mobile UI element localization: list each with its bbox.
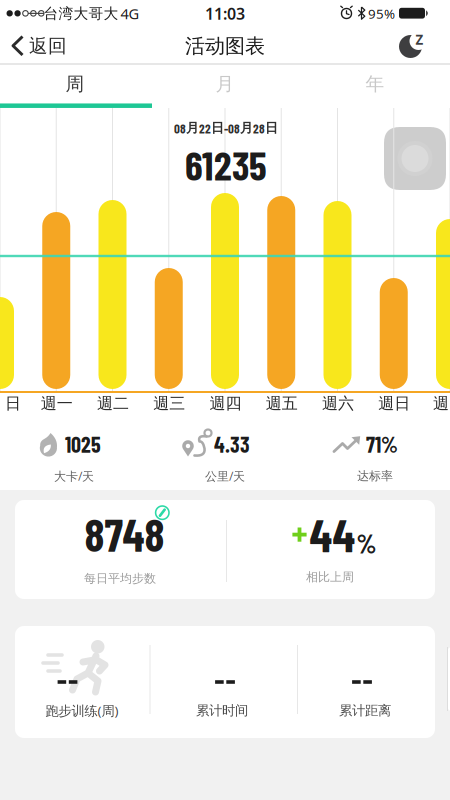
staticText: 4G (120, 4, 139, 23)
staticText: 95% (368, 5, 395, 22)
staticText: 公里/天 (205, 468, 245, 484)
staticText: 週一 (41, 394, 73, 413)
staticText: 跑步训练(周) (45, 702, 118, 719)
staticText: 1025 (65, 431, 101, 457)
staticText: 週五 (266, 394, 298, 413)
staticText: 月 (215, 72, 234, 95)
staticText: 累计距离 (339, 702, 391, 719)
staticText: 日 (5, 394, 21, 413)
staticText: 44 (309, 505, 355, 561)
button[interactable]: 周 (0, 64, 150, 104)
staticText: 台湾大哥大 (43, 4, 118, 22)
staticText: 週三 (153, 394, 185, 413)
staticText: 返回 (29, 34, 67, 57)
staticText: 大卡/天 (54, 468, 94, 484)
staticText: 周 (65, 72, 84, 95)
staticText: 相比上周 (306, 570, 354, 584)
button[interactable]: 睡眠 (396, 27, 432, 63)
button[interactable]: 每日平均步数 (15, 500, 435, 599)
staticText: 每日平均步数 (84, 571, 156, 586)
staticText: 4.33 (214, 431, 250, 457)
button[interactable]: 月 (150, 64, 300, 104)
staticText: 週二 (97, 394, 129, 413)
staticText: 週四 (209, 394, 241, 413)
staticText: 8748 (84, 506, 164, 561)
staticText: 週日 (378, 394, 410, 413)
staticText: 週六 (322, 394, 354, 413)
staticText: 累计时间 (196, 702, 248, 719)
staticText: 活动图表 (185, 34, 265, 58)
staticText: % (356, 527, 376, 559)
button[interactable]: 返回 (13, 28, 67, 64)
staticText: 71% (366, 431, 398, 457)
staticText: 年 (365, 72, 384, 95)
staticText: 61235 (185, 140, 267, 188)
staticText: 达标率 (357, 469, 393, 483)
staticText: 11:03 (205, 3, 245, 24)
staticText: 週 (433, 394, 449, 413)
button[interactable]: 年 (300, 64, 450, 104)
staticText: 08月22日-08月28日 (174, 120, 278, 136)
staticText: Z (415, 31, 423, 48)
button[interactable]: 跑步训练 (15, 626, 435, 738)
